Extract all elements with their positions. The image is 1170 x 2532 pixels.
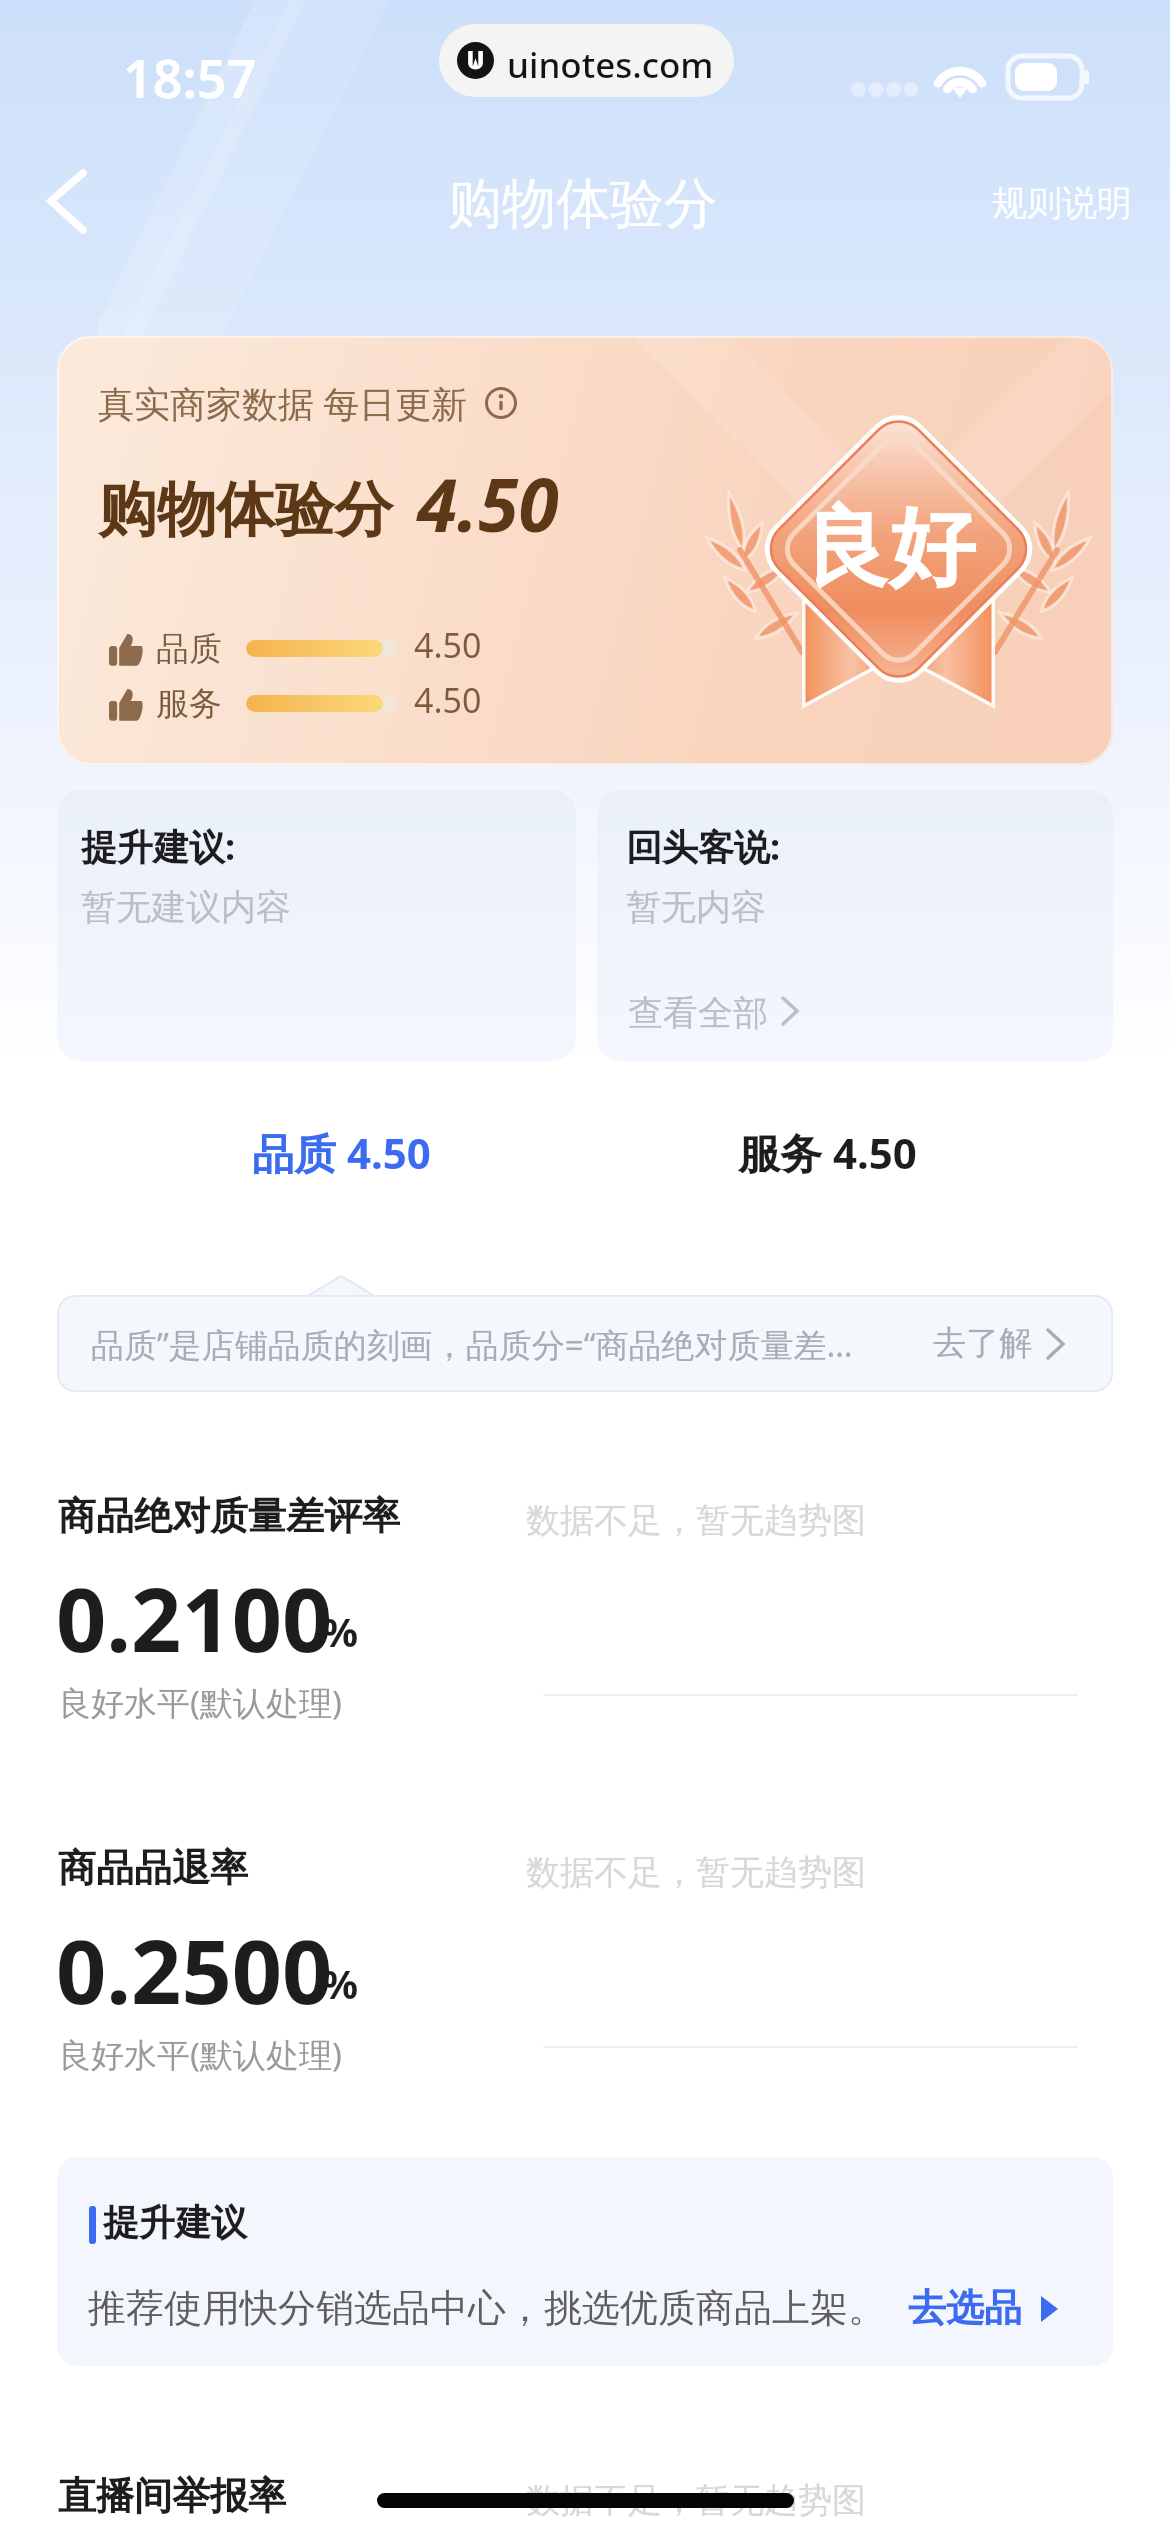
button[interactable]: 提升建议 [57,2157,1113,2366]
button[interactable]: 提升建议: [57,790,576,1061]
staticText: 提升建议: [81,822,236,871]
staticText: 购物体验分 [98,473,393,547]
staticText: 直播间举报率 [58,2472,286,2520]
staticText: 去选品 [908,2284,1022,2332]
staticText: 暂无内容 [626,885,766,929]
staticText: 0.2100 [56,1558,333,1678]
button[interactable]: 服务 4.50 [584,1108,1070,1196]
staticText: 服务 [156,683,222,725]
staticText: 0.2500 [56,1910,333,2030]
staticText: 查看全部 [628,991,768,1035]
button[interactable]: 查看全部 [617,980,812,1040]
button[interactable]: 去了解 [921,1311,1086,1377]
staticText: 去了解 [933,1322,1032,1364]
staticText: % [322,1604,359,1658]
staticText: 良好水平(默认处理) [58,1680,342,1725]
button[interactable]: 良好 [57,336,1113,765]
button[interactable]: 规则说明 [972,158,1152,242]
staticText: uinotes.com [507,41,714,89]
staticText: 提升建议 [103,2200,247,2245]
button[interactable]: Back [16,155,116,251]
staticText: 4.50 [414,677,482,723]
staticText: 商品品退率 [58,1844,248,1892]
staticText: 暂无建议内容 [81,885,291,929]
staticText: 18:57 [123,42,257,113]
button[interactable]: 去选品 [900,2271,1080,2335]
staticText: 规则说明 [992,181,1132,225]
staticText: 商品绝对质量差评率 [58,1492,400,1540]
button[interactable]: 品质”是店铺品质的刻画，品质分=“商品绝对质量差… [57,1295,1113,1392]
button[interactable]: 回头客说: [597,790,1113,1061]
staticText: 4.50 [417,454,559,553]
staticText: 4.50 [414,622,482,668]
staticText: 服务 4.50 [738,1124,917,1181]
button[interactable]: 品质 4.50 [98,1108,584,1196]
staticText: 推荐使用快分销选品中心，挑选优质商品上架。 [88,2284,886,2332]
staticText: 品质”是店铺品质的刻画，品质分=“商品绝对质量差… [91,1322,853,1367]
staticText: 数据不足，暂无趋势图 [526,2479,866,2522]
staticText: 良好 [803,494,975,602]
staticText: 良好水平(默认处理) [58,2032,342,2077]
staticText: 回头客说: [626,822,781,871]
staticText: 数据不足，暂无趋势图 [526,1851,866,1894]
staticText: 数据不足，暂无趋势图 [526,1499,866,1542]
staticText: 真实商家数据 每日更新 [98,379,468,428]
staticText: 品质 4.50 [252,1124,431,1181]
staticText: 品质 [156,628,222,670]
staticText: 购物体验分 [448,170,718,238]
staticText: % [322,1956,359,2010]
